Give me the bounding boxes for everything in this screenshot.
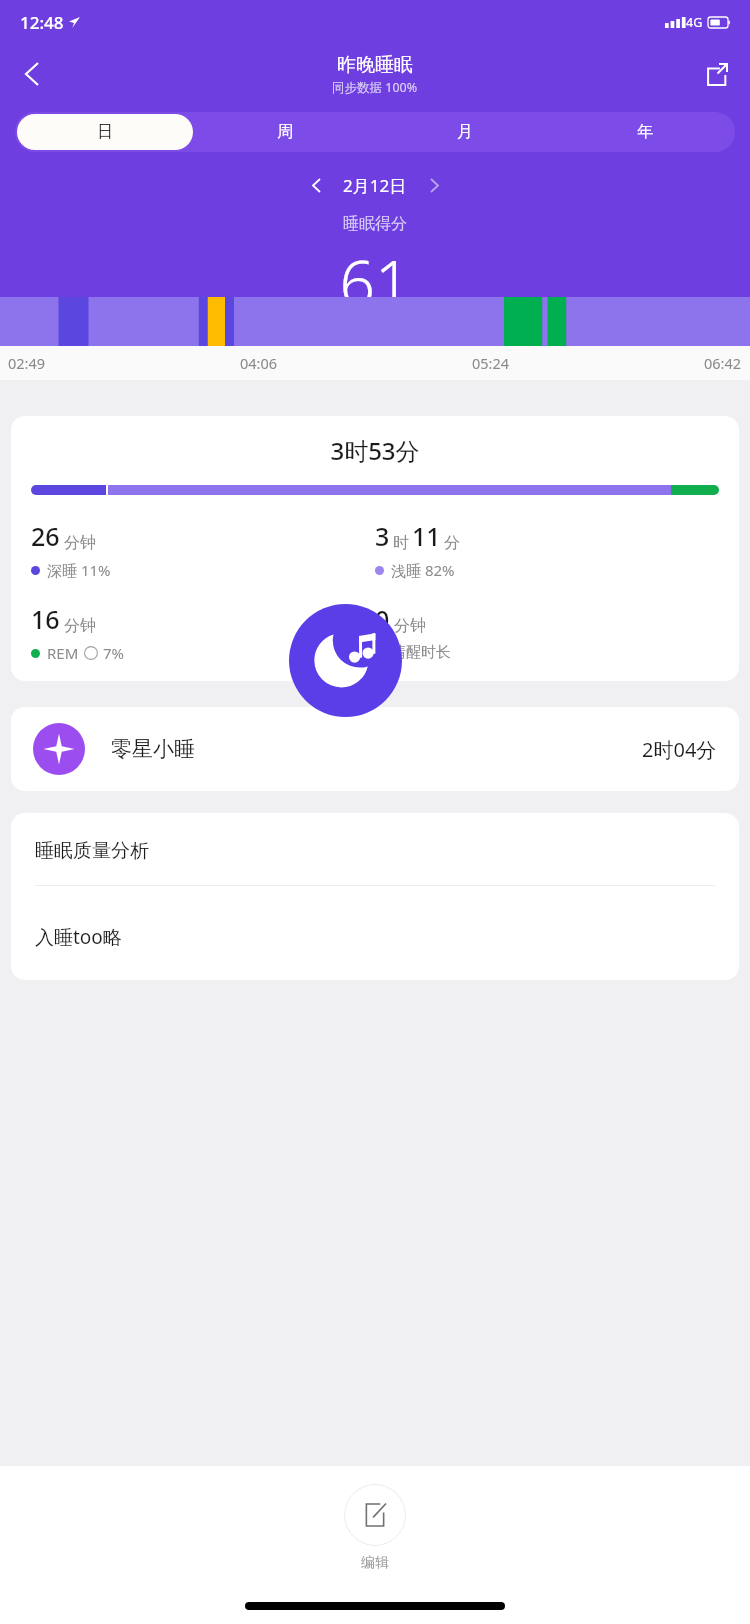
button[interactable]: Previous day (299, 168, 333, 202)
staticText: 61 (0, 240, 750, 297)
staticText: 06:42 (704, 353, 742, 373)
staticText: 3时53分 (31, 434, 719, 467)
staticText: 分钟 (64, 533, 96, 553)
staticText: 月 (457, 122, 473, 142)
staticText: 02:49 (8, 353, 46, 373)
staticText: 2时04分 (642, 736, 717, 763)
button[interactable]: Back (8, 50, 56, 98)
staticText: 深睡 11% (47, 560, 111, 580)
button[interactable]: 日 (17, 114, 193, 150)
staticText: 分钟 (64, 616, 96, 636)
staticText: REM (47, 643, 79, 663)
button[interactable]: REM info (84, 646, 98, 660)
button[interactable]: 年 (557, 114, 733, 150)
staticText: 同步数据 100% (332, 79, 418, 96)
staticText: 时 (393, 533, 409, 553)
staticText: 清醒时长 (391, 643, 451, 662)
button[interactable]: Next day (417, 168, 451, 202)
staticText: 04:06 (240, 353, 278, 373)
staticText: 年 (637, 122, 653, 142)
staticText: 零星小睡 (111, 736, 195, 762)
staticText: 分钟 (394, 616, 426, 636)
staticText: 4G (686, 14, 703, 31)
staticText: 睡眠得分 (0, 214, 750, 234)
staticText: 昨晚睡眠 (337, 53, 413, 77)
button[interactable]: 零星小睡 (11, 707, 739, 791)
staticText: 日 (97, 122, 113, 142)
staticText: 26 (31, 519, 60, 553)
staticText: 05:24 (472, 353, 510, 373)
staticText: 睡眠质量分析 (35, 839, 149, 863)
staticText: 周 (277, 122, 293, 142)
button[interactable]: Sleep music (289, 604, 402, 717)
staticText: 16 (31, 602, 60, 636)
staticText: 7% (103, 643, 125, 663)
button[interactable]: 3时53分 (11, 416, 739, 681)
button[interactable]: 月 (377, 114, 553, 150)
staticText: 3 (375, 519, 390, 553)
staticText: 12:48 (20, 11, 64, 34)
staticText: 浅睡 82% (391, 560, 455, 580)
staticText: 11 (412, 519, 441, 553)
button[interactable]: 编辑 (330, 1480, 420, 1576)
staticText: 分 (444, 533, 460, 553)
staticText: 2月12日 (343, 174, 407, 197)
staticText: 0 (375, 602, 390, 636)
staticText: 编辑 (361, 1554, 389, 1572)
button[interactable]: 周 (197, 114, 373, 150)
button[interactable]: 睡眠质量分析 (11, 813, 739, 980)
button[interactable]: Share (692, 50, 740, 98)
staticText: 入睡too略 (35, 924, 122, 950)
